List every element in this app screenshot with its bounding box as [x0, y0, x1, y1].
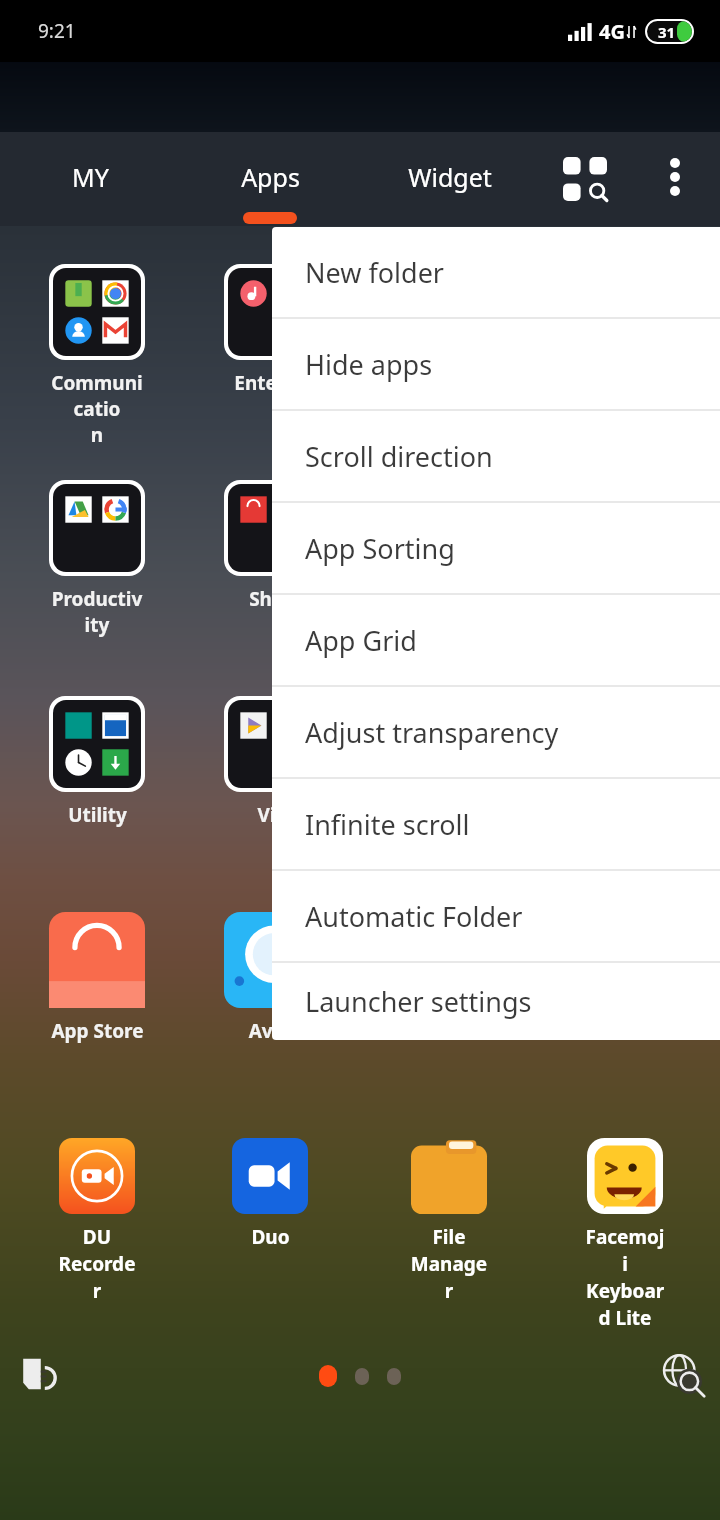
staticText: File Manager	[408, 1224, 490, 1304]
button[interactable]: Global search	[648, 1340, 716, 1408]
button[interactable]: Productivity	[49, 480, 145, 638]
staticText: Productivity	[49, 586, 145, 638]
staticText: Entertai	[234, 370, 311, 396]
button[interactable]: Shop	[224, 480, 320, 612]
staticText: 31	[658, 22, 676, 42]
staticText: Shop	[249, 586, 296, 612]
button[interactable]: Avee	[224, 912, 320, 1044]
button[interactable]: App search	[552, 146, 618, 212]
staticText: New folder	[305, 254, 445, 291]
staticText: Automatic Folder	[305, 898, 523, 935]
button[interactable]: Entertai	[224, 264, 320, 396]
button[interactable]: App Sorting	[272, 503, 720, 593]
staticText: Hide apps	[305, 346, 433, 383]
button[interactable]: App Grid	[272, 595, 720, 685]
staticText: Widget	[408, 160, 492, 194]
button[interactable]: Infinite scroll	[272, 779, 720, 869]
staticText: Apps	[241, 160, 300, 194]
staticText: DU Recorder	[56, 1224, 138, 1304]
staticText: Communicatio n	[49, 370, 145, 448]
staticText: Adjust transparency	[305, 714, 559, 751]
button[interactable]: Scroll direction	[272, 411, 720, 501]
staticText: Scroll direction	[305, 438, 493, 475]
button[interactable]: Apps	[190, 132, 350, 226]
staticText: Facemoji Keyboard Lite	[584, 1224, 666, 1331]
staticText: 9:21	[38, 18, 76, 44]
button[interactable]: Launcher settings	[272, 963, 720, 1040]
staticText: Avee	[246, 1018, 298, 1044]
button[interactable]: Widget	[370, 132, 530, 226]
staticText: 4G	[599, 18, 625, 45]
staticText: App Store	[51, 1018, 144, 1044]
staticText: App Sorting	[305, 530, 455, 567]
staticText: Utility	[68, 802, 127, 828]
button[interactable]: DU Recorder	[56, 1138, 138, 1304]
button[interactable]: Communicatio n	[49, 264, 145, 448]
button[interactable]: New folder	[272, 227, 720, 317]
staticText: Duo	[251, 1224, 290, 1250]
staticText: Infinite scroll	[305, 806, 470, 843]
button[interactable]: Adjust transparency	[272, 687, 720, 777]
staticText: App Grid	[305, 622, 417, 659]
staticText: Launcher settings	[305, 983, 532, 1020]
button[interactable]: Facemoji Keyboard Lite	[584, 1138, 666, 1331]
button[interactable]: File Manager	[408, 1138, 490, 1304]
staticText: MY	[72, 160, 109, 194]
button[interactable]: Wallpaper carousel	[6, 1340, 74, 1408]
button[interactable]: Vid	[224, 696, 320, 828]
button[interactable]: Duo	[232, 1138, 314, 1250]
button[interactable]: Utility	[49, 696, 145, 828]
button[interactable]: Hide apps	[272, 319, 720, 409]
button[interactable]: MY	[10, 132, 170, 226]
button[interactable]: More options	[644, 146, 706, 208]
staticText: Vid	[257, 802, 288, 828]
button[interactable]: Automatic Folder	[272, 871, 720, 961]
button[interactable]: App Store	[49, 912, 145, 1044]
